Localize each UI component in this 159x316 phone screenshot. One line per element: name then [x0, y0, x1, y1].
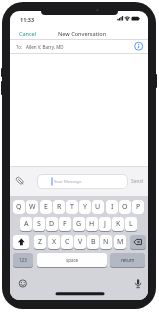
staticText: Q	[16, 202, 22, 212]
staticText: Your Message	[54, 179, 82, 185]
staticText: Allen V, Barry, MD	[26, 44, 64, 50]
staticText: return	[121, 257, 135, 263]
staticText: W	[29, 202, 36, 212]
staticText: P	[136, 202, 141, 212]
staticText: To:	[16, 44, 23, 50]
staticText: B	[91, 237, 96, 247]
staticText: N	[103, 237, 109, 247]
staticText: Cancel	[19, 30, 37, 37]
staticText: 123	[19, 257, 27, 263]
staticText: G	[76, 219, 82, 229]
staticText: K	[116, 219, 121, 229]
staticText: C	[65, 237, 70, 247]
staticText: A	[24, 219, 29, 229]
staticText: M	[117, 237, 124, 247]
staticText: Send	[131, 178, 143, 185]
staticText: New Conversation	[58, 30, 107, 37]
staticText: L	[129, 219, 133, 229]
staticText: E	[44, 202, 48, 212]
staticText: D	[49, 219, 55, 229]
staticText: space	[66, 257, 79, 263]
staticText: J	[104, 219, 106, 229]
staticText: F	[63, 219, 67, 229]
staticText: O	[122, 202, 128, 212]
staticText: 11:33	[20, 16, 35, 23]
staticText: X	[52, 237, 57, 247]
staticText: R	[57, 202, 62, 212]
staticText: I	[111, 202, 114, 212]
staticText: Y	[83, 202, 87, 212]
staticText: V	[78, 237, 83, 247]
staticText: U	[95, 202, 101, 212]
staticText: Z	[38, 237, 43, 247]
staticText: S	[37, 219, 41, 229]
staticText: T	[70, 202, 74, 212]
staticText: H	[89, 219, 95, 229]
